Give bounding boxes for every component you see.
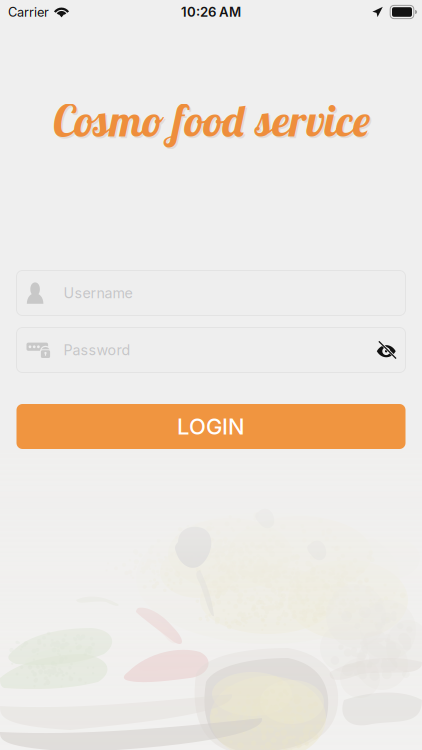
staticText: Password xyxy=(63,341,130,359)
staticText: Carrier xyxy=(8,4,49,20)
staticText: Cosmo food service xyxy=(52,92,370,147)
staticText: Cosmo food service xyxy=(54,94,372,149)
staticText: Username xyxy=(63,284,132,302)
staticText: LOGIN xyxy=(177,413,245,440)
button[interactable]: Show password xyxy=(376,340,397,359)
staticText: 10:26 AM xyxy=(181,4,241,20)
button[interactable]: LOGIN xyxy=(16,404,405,449)
